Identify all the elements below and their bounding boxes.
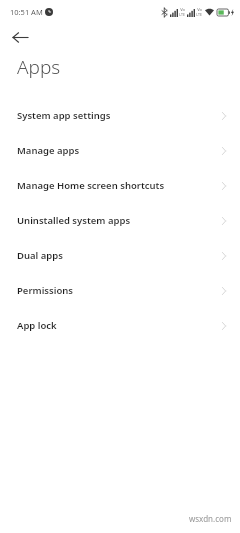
button[interactable]: Manage apps (0, 133, 240, 168)
staticText: System app settings (17, 109, 111, 122)
button[interactable]: Dual apps (0, 238, 240, 273)
staticText: Vo (180, 7, 185, 12)
button[interactable]: App lock (0, 308, 240, 343)
staticText: Permissions (17, 284, 73, 297)
button[interactable]: Permissions (0, 273, 240, 308)
staticText: Dual apps (17, 249, 63, 262)
staticText: Manage Home screen shortcuts (17, 179, 165, 192)
staticText: LTE (179, 12, 185, 17)
button[interactable]: Uninstalled system apps (0, 203, 240, 238)
staticText: Uninstalled system apps (17, 214, 131, 227)
staticText: Manage apps (17, 144, 80, 157)
staticText: App lock (17, 319, 57, 332)
staticText: 10:51 AM (10, 7, 43, 17)
button[interactable]: System app settings (0, 98, 240, 133)
staticText: LTE (196, 12, 202, 17)
staticText: wsxdn.com (189, 513, 232, 524)
staticText: Apps (17, 54, 61, 80)
button[interactable]: Manage Home screen shortcuts (0, 168, 240, 203)
button[interactable]: Back (9, 26, 31, 48)
staticText: Vo (197, 7, 202, 12)
